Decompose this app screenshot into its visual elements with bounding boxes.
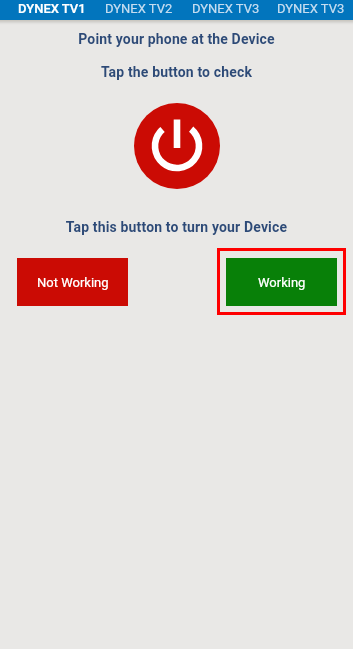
staticText: Working (258, 275, 306, 290)
staticText: Tap this button to turn your Device (0, 219, 353, 235)
staticText: DYNEX TV3 (277, 1, 345, 16)
staticText: Not Working (37, 275, 109, 290)
staticText: DYNEX TV3 (192, 1, 260, 16)
button[interactable]: Power (134, 103, 220, 189)
staticText: Tap the button to check (0, 64, 353, 80)
button[interactable]: DYNEX TV1 (8, 0, 95, 20)
button[interactable]: DYNEX TV2 (95, 0, 182, 20)
button[interactable]: Working (226, 258, 337, 306)
staticText: Point your phone at the Device (0, 31, 353, 47)
staticText: DYNEX TV2 (105, 1, 173, 16)
button[interactable]: DYNEX TV3 (269, 0, 353, 20)
staticText: DYNEX TV1 (18, 1, 86, 16)
button[interactable]: Not Working (17, 258, 128, 306)
button[interactable]: DYNEX TV3 (182, 0, 269, 20)
